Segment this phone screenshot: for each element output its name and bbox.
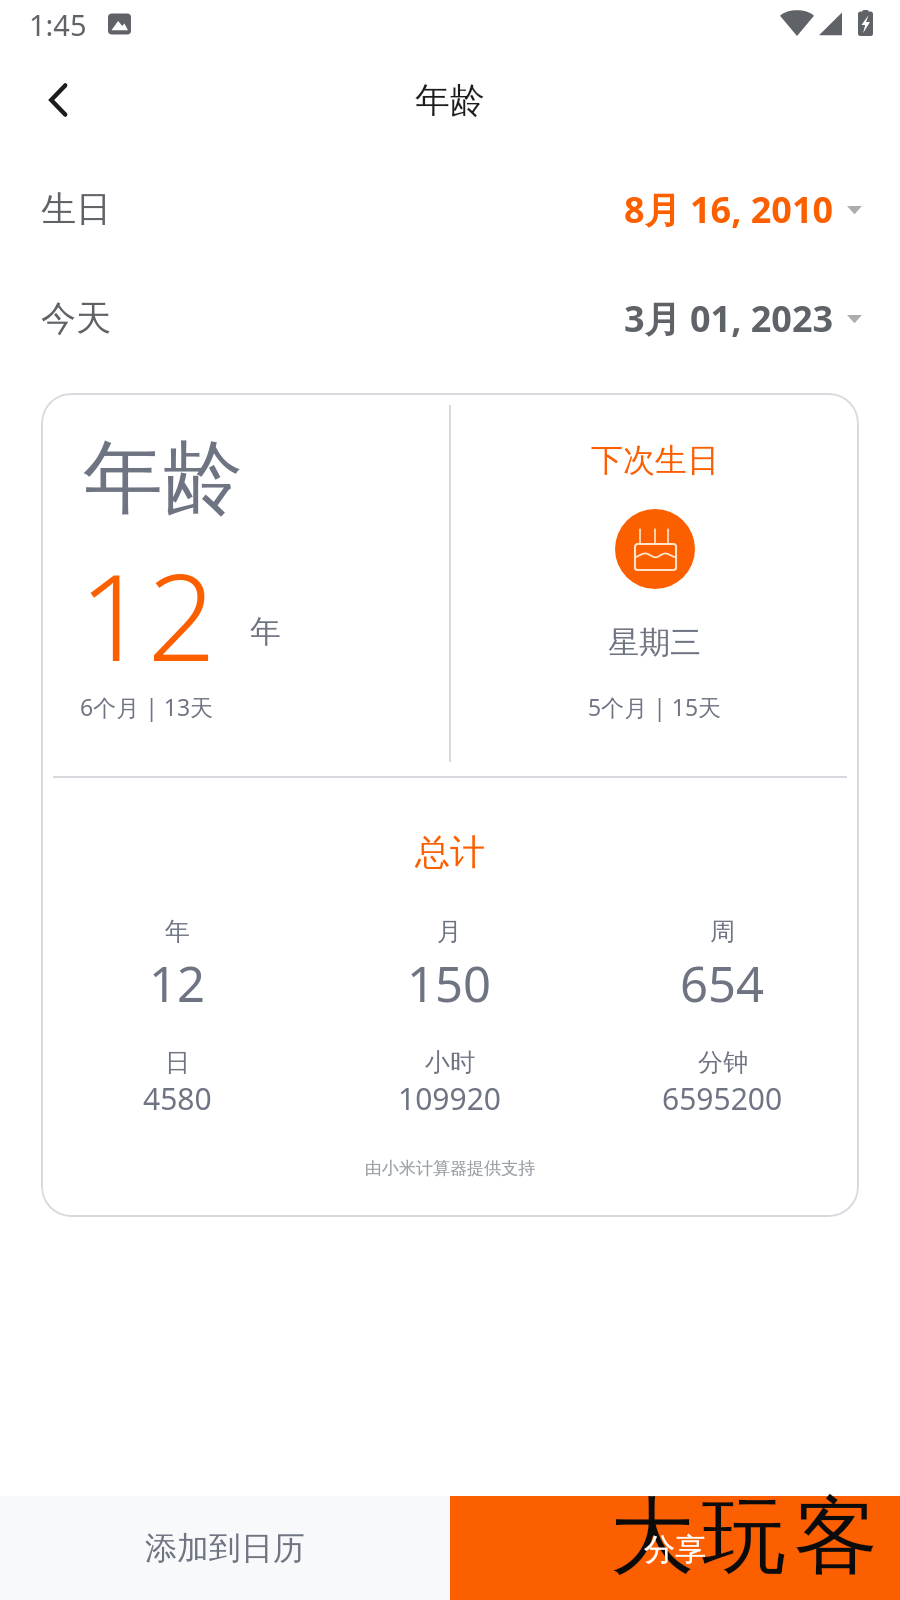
- staticText: 12: [149, 950, 206, 1017]
- staticText: 6个月 | 13天: [80, 691, 214, 722]
- staticText: 日: [165, 1047, 190, 1078]
- staticText: 3月 01, 2023: [624, 294, 834, 343]
- button[interactable]: Back: [20, 62, 96, 138]
- staticText: 小时: [425, 1047, 475, 1078]
- staticText: 大玩客: [606, 1484, 882, 1588]
- staticText: 生日: [41, 187, 111, 231]
- staticText: 12: [79, 533, 217, 696]
- staticText: 4580: [143, 1078, 212, 1119]
- staticText: 150: [407, 950, 492, 1017]
- staticText: 月: [437, 916, 462, 947]
- staticText: 添加到日历: [145, 1528, 305, 1568]
- staticText: 109920: [398, 1078, 501, 1119]
- staticText: 周: [710, 916, 735, 947]
- staticText: 年龄: [83, 428, 243, 529]
- staticText: 5个月 | 15天: [588, 691, 722, 722]
- staticText: 分享: [644, 1530, 706, 1569]
- staticText: 1:45: [29, 5, 87, 44]
- button[interactable]: 分享: [450, 1496, 900, 1600]
- staticText: 年: [250, 612, 281, 651]
- staticText: 年: [165, 916, 190, 947]
- button[interactable]: 生日: [0, 177, 900, 241]
- button[interactable]: 添加到日历: [0, 1496, 450, 1600]
- staticText: 下次生日: [591, 440, 719, 480]
- staticText: 654: [680, 950, 765, 1017]
- staticText: 今天: [41, 296, 111, 340]
- staticText: 8月 16, 2010: [624, 185, 834, 234]
- button[interactable]: 今天: [0, 286, 900, 350]
- staticText: 由小米计算器提供支持: [365, 1158, 535, 1179]
- staticText: 年龄: [415, 78, 485, 122]
- staticText: 6595200: [662, 1078, 783, 1119]
- staticText: 分钟: [698, 1047, 748, 1078]
- staticText: 星期三: [608, 623, 701, 662]
- staticText: 总计: [415, 830, 485, 874]
